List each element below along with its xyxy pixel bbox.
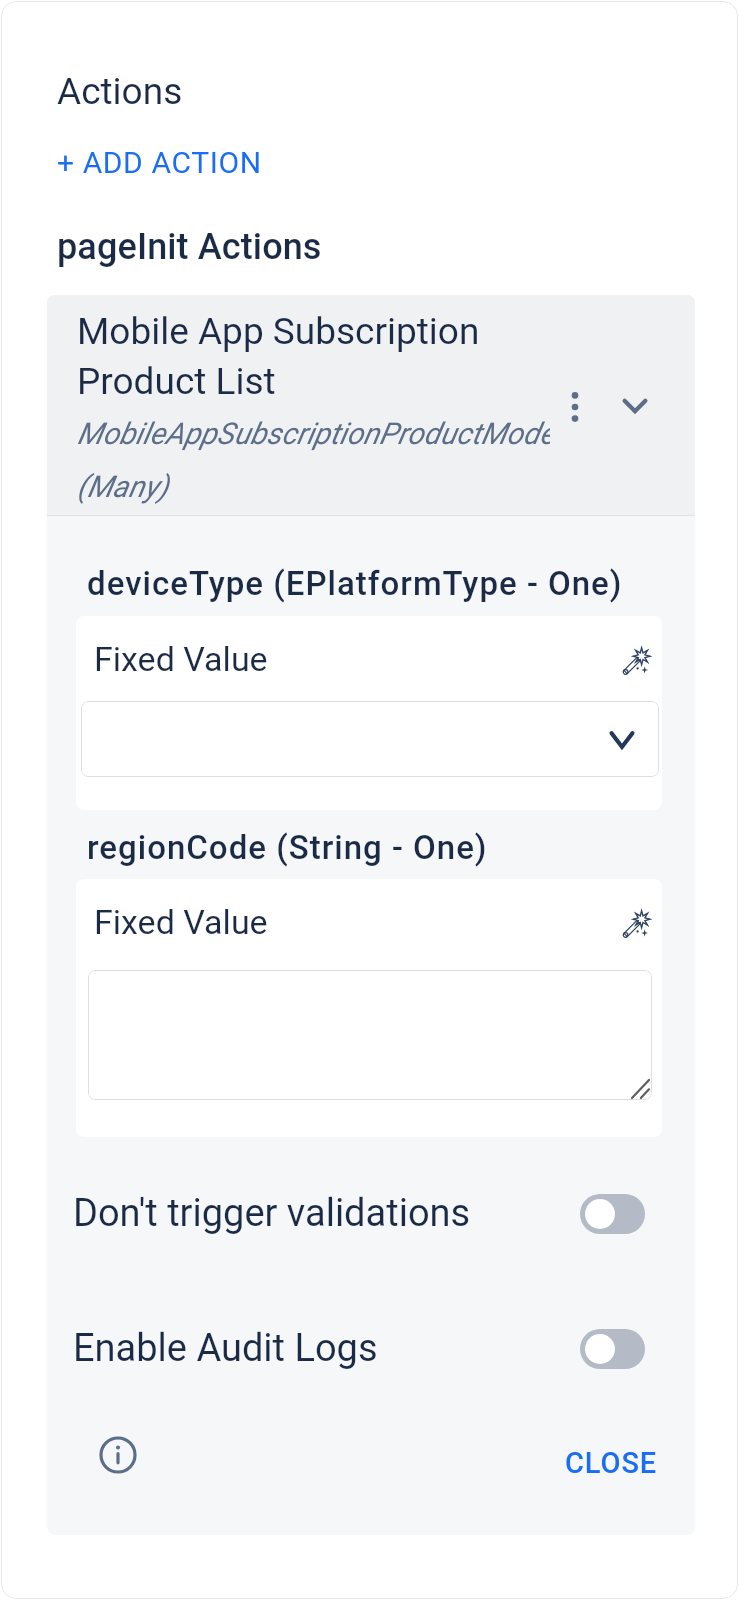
staticText: CLOSE xyxy=(565,1446,658,1480)
button[interactable]: Magic value xyxy=(615,902,659,946)
staticText: Fixed Value xyxy=(94,639,268,679)
staticText: Enable Audit Logs xyxy=(73,1326,378,1371)
staticText: Fixed Value xyxy=(94,902,268,942)
staticText: Don't trigger validations xyxy=(73,1191,471,1236)
staticText: (Many) xyxy=(77,469,169,504)
staticText: Mobile App Subscription Product List xyxy=(77,310,550,403)
button[interactable] xyxy=(81,701,659,777)
staticText: deviceType (EPlatformType - One) xyxy=(87,564,623,603)
staticText: MobileAppSubscriptionProductModel xyxy=(77,416,550,451)
staticText: + ADD ACTION xyxy=(57,145,262,180)
button[interactable]: More options xyxy=(552,384,598,430)
staticText: pageInit Actions xyxy=(57,226,322,268)
button[interactable] xyxy=(88,970,652,1100)
button[interactable]: Info xyxy=(92,1429,144,1481)
button[interactable]: + ADD ACTION xyxy=(57,145,262,180)
button[interactable]: CLOSE xyxy=(561,1438,662,1488)
staticText: regionCode (String - One) xyxy=(87,828,488,867)
button[interactable]: Collapse xyxy=(612,384,658,430)
button[interactable]: Magic value xyxy=(615,639,659,683)
button[interactable]: Enable Audit Logs xyxy=(73,1326,645,1371)
button[interactable]: Don't trigger validations xyxy=(73,1191,645,1236)
staticText: Actions xyxy=(57,70,183,113)
